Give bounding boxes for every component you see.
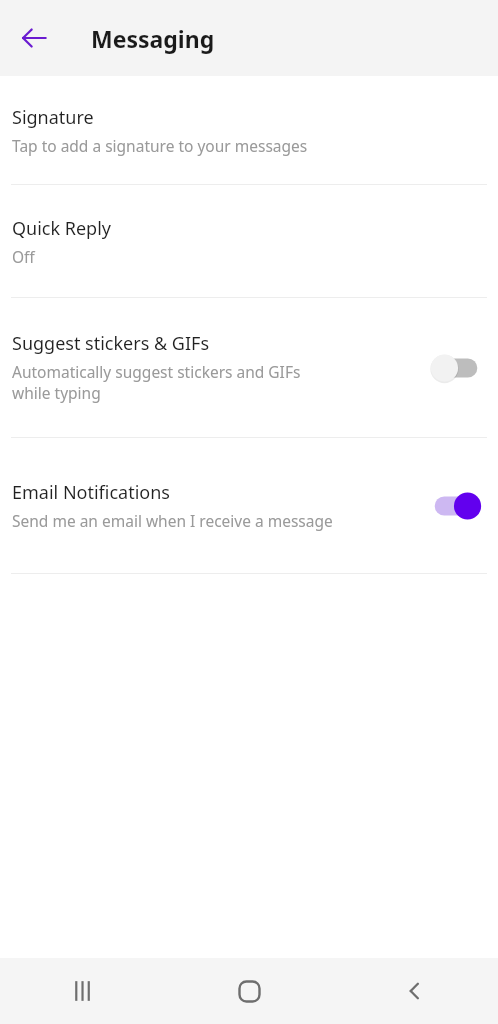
button[interactable]: Back (10, 14, 58, 62)
button[interactable]: Back (332, 958, 498, 1024)
button[interactable]: Toggle on (430, 489, 482, 523)
button[interactable]: Toggle off (430, 351, 482, 385)
staticText: Quick Reply (12, 216, 111, 241)
staticText: Tap to add a signature to your messages (12, 135, 388, 156)
staticText: Suggest stickers & GIFs (12, 331, 210, 356)
staticText: Messaging (91, 23, 215, 54)
button[interactable]: Signature (0, 76, 498, 184)
staticText: Signature (12, 105, 94, 130)
button[interactable]: Quick Reply (0, 185, 498, 297)
staticText: Off (12, 246, 388, 267)
button[interactable]: Suggest stickers & GIFs (0, 298, 498, 437)
button[interactable]: Email Notifications (0, 438, 498, 573)
staticText: Automatically suggest stickers and GIFs … (12, 361, 338, 404)
staticText: Email Notifications (12, 480, 170, 505)
button[interactable]: Recent apps (0, 958, 166, 1024)
staticText: Send me an email when I receive a messag… (12, 510, 338, 531)
button[interactable]: Home (166, 958, 332, 1024)
